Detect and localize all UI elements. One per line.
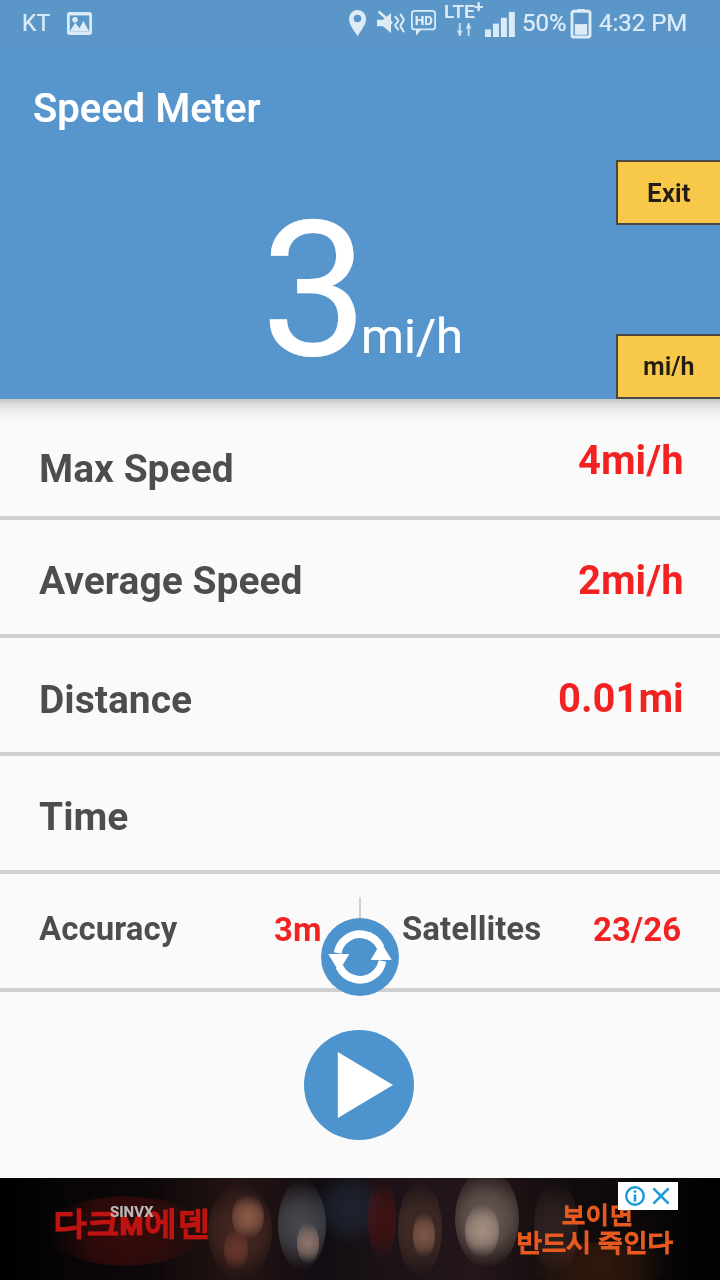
button[interactable]: Time <box>0 756 720 874</box>
button[interactable]: Distance <box>0 638 720 756</box>
staticText: 50% <box>522 9 567 37</box>
staticText: mi/h <box>361 308 464 365</box>
staticText: Max Speed <box>39 446 234 492</box>
staticText: Exit <box>647 178 691 208</box>
staticText: 다크м에덴 <box>53 1203 211 1245</box>
button[interactable]: Exit <box>618 162 720 223</box>
staticText: mi/h <box>643 352 695 381</box>
staticText: 보이면 <box>561 1200 633 1230</box>
button[interactable]: Average Speed <box>0 520 720 638</box>
staticText: HD <box>415 13 433 28</box>
staticText: 2mi/h <box>578 557 684 604</box>
staticText: Accuracy <box>39 909 178 948</box>
button[interactable]: Max Speed <box>0 402 720 520</box>
staticText: Average Speed <box>39 558 303 604</box>
staticText: 4:32 PM <box>599 9 688 37</box>
staticText: 반드시 죽인다 <box>516 1227 673 1258</box>
button[interactable]: 다크м에덴 <box>0 1178 720 1280</box>
staticText: 0.01mi <box>558 675 684 722</box>
staticText: 4mi/h <box>578 437 684 484</box>
staticText: 3m <box>274 910 322 949</box>
button[interactable]: Accuracy <box>0 874 720 992</box>
button[interactable]: Refresh <box>321 918 399 996</box>
staticText: SINVX <box>110 1203 154 1221</box>
staticText: KT <box>22 10 51 37</box>
staticText: + <box>474 0 484 16</box>
button[interactable]: Ad info and close <box>618 1182 678 1210</box>
button[interactable]: Start tracking <box>304 1030 414 1140</box>
staticText: 23/26 <box>593 910 682 949</box>
staticText: Time <box>39 794 129 840</box>
staticText: LTE <box>444 0 475 22</box>
staticText: 3 <box>261 179 368 402</box>
staticText: Speed Meter <box>33 85 261 132</box>
staticText: Satellites <box>402 909 542 948</box>
staticText: Distance <box>39 677 193 723</box>
button[interactable]: mi/h <box>618 336 720 397</box>
